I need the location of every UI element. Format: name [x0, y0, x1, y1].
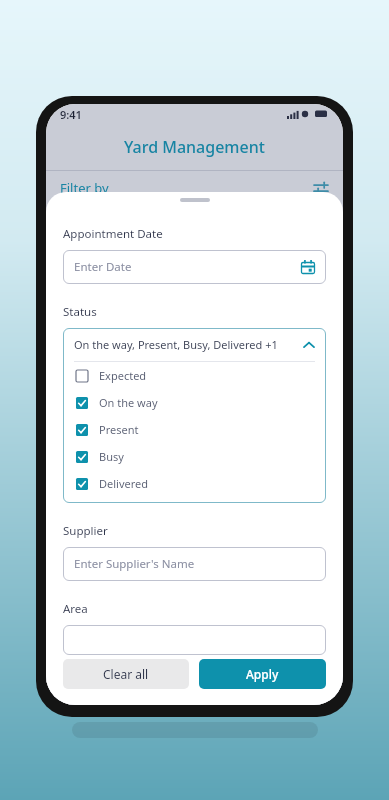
button[interactable]: Busy — [63, 443, 326, 470]
button[interactable]: On the way — [63, 389, 326, 416]
staticText: Busy — [99, 449, 124, 464]
button[interactable]: Clear all — [63, 659, 189, 689]
staticText: Enter Date — [74, 259, 132, 275]
button[interactable]: Expected — [63, 362, 326, 389]
staticText: Status — [63, 304, 97, 320]
staticText: Yard Management — [124, 136, 265, 158]
staticText: Enter Supplier's Name — [74, 556, 195, 572]
button[interactable]: On the way, Present, Busy, Delivered +1 — [63, 328, 326, 361]
staticText: Supplier — [63, 523, 108, 539]
button[interactable]: Enter Date — [63, 250, 326, 284]
staticText: On the way, Present, Busy, Delivered +1 — [74, 337, 278, 352]
button[interactable]: Delivered — [63, 470, 326, 497]
button[interactable] — [63, 625, 326, 655]
staticText: 9:41 — [60, 107, 82, 122]
staticText: Expected — [99, 368, 147, 383]
other: Pick date — [301, 260, 315, 274]
staticText: Area — [63, 601, 88, 617]
staticText: Present — [99, 422, 139, 437]
staticText: Clear all — [103, 666, 149, 682]
staticText: Apply — [246, 666, 279, 682]
staticText: Appointment Date — [63, 226, 163, 242]
button[interactable]: Present — [63, 416, 326, 443]
button[interactable]: Enter Supplier's Name — [63, 547, 326, 581]
staticText: Filter by — [60, 179, 109, 197]
staticText: On the way — [99, 395, 158, 410]
button[interactable]: Apply — [199, 659, 326, 689]
other: Filter — [313, 180, 329, 196]
staticText: Delivered — [99, 476, 148, 491]
